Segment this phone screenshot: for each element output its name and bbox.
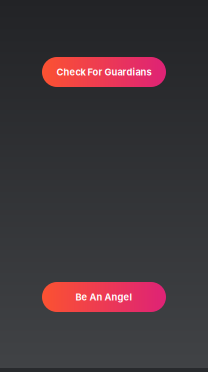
button[interactable]: Be An Angel: [42, 282, 166, 312]
staticText: Be An Angel: [75, 291, 132, 303]
button[interactable]: Check For Guardians: [42, 57, 166, 87]
staticText: Check For Guardians: [56, 66, 151, 78]
